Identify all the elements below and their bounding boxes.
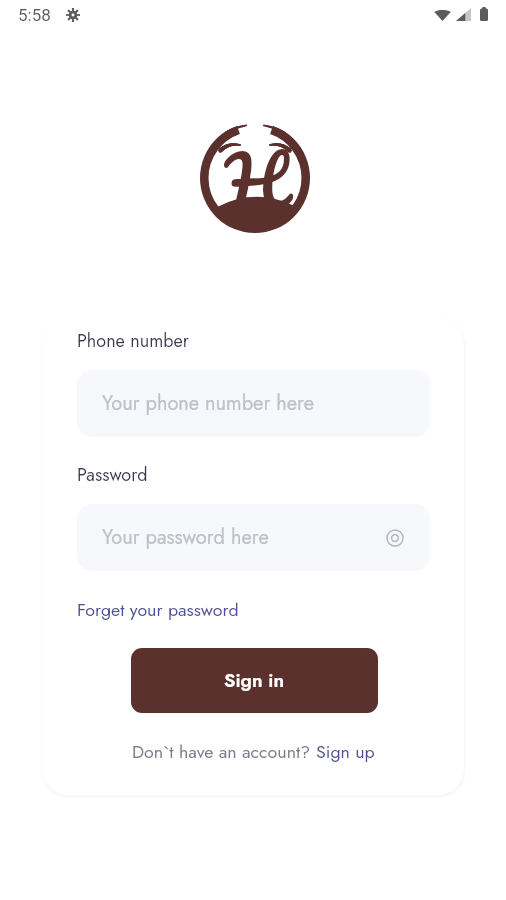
staticText: Forget your password — [77, 597, 239, 623]
staticText: 5:58 — [18, 5, 51, 25]
staticText: Sign up — [316, 739, 375, 765]
staticText: Don`t have an account? — [132, 739, 316, 765]
button[interactable]: Your phone number here — [77, 370, 430, 437]
button[interactable]: Your password here — [77, 504, 430, 571]
staticText: Phone number — [77, 328, 189, 354]
staticText: Your password here — [102, 523, 269, 552]
button[interactable]: Show password — [385, 528, 405, 548]
staticText: Sign in — [224, 667, 285, 694]
button[interactable]: Sign up — [316, 739, 375, 765]
staticText: Your phone number here — [102, 389, 314, 418]
button[interactable]: Sign in — [131, 648, 378, 713]
button[interactable]: Forget your password — [77, 597, 239, 623]
staticText: Password — [77, 462, 148, 488]
